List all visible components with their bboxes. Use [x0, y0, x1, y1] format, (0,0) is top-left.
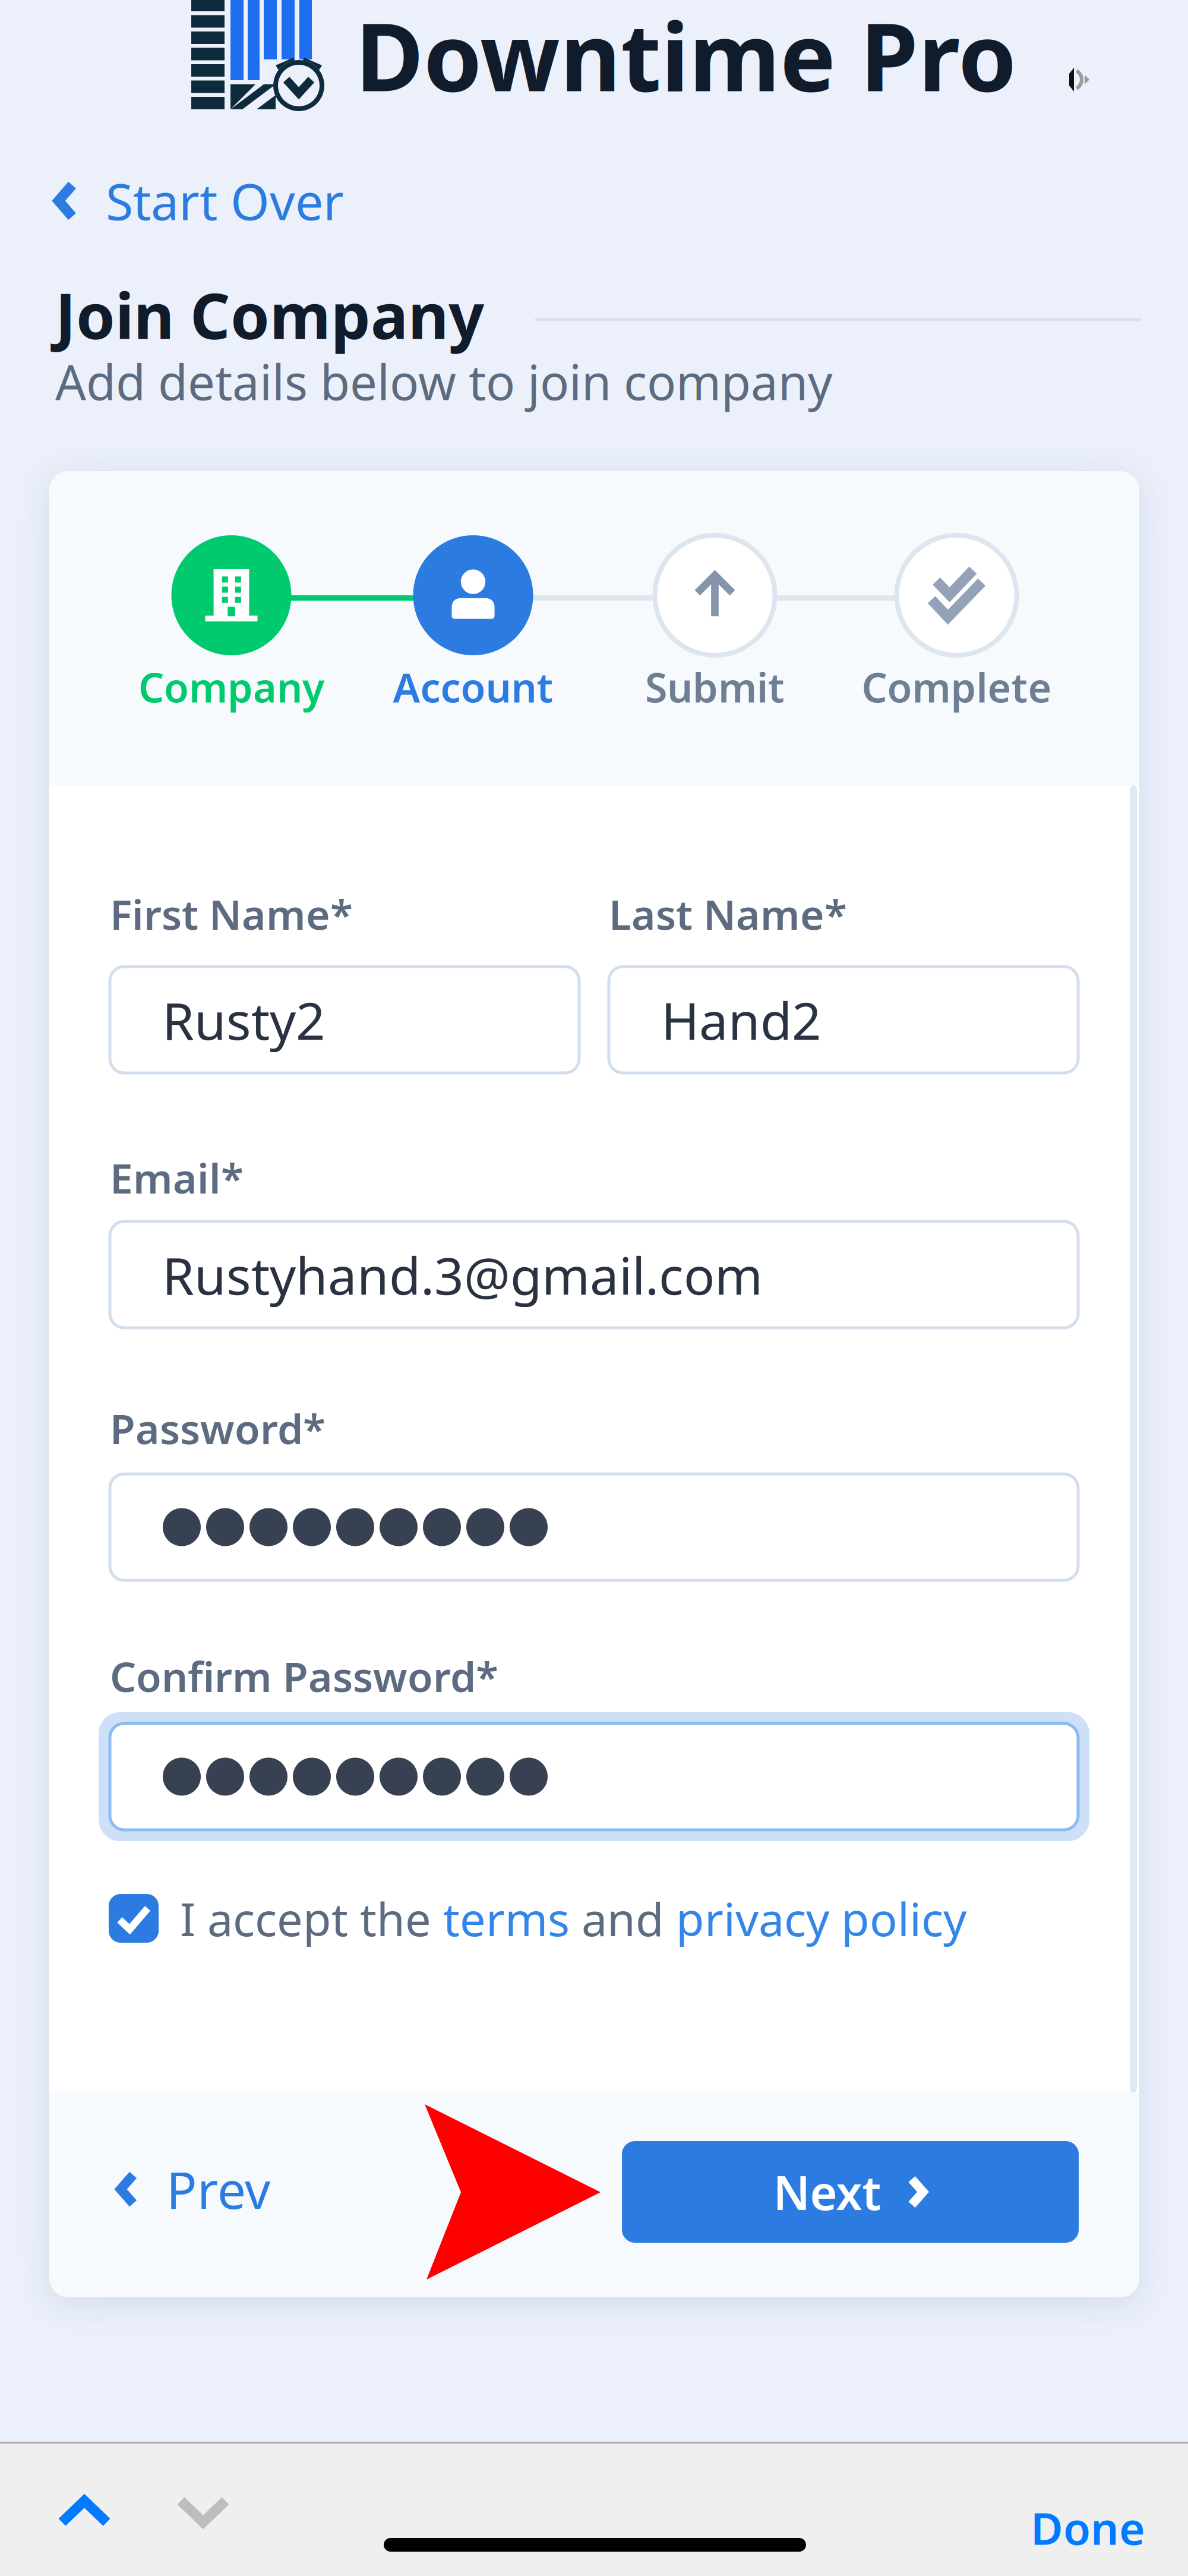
- staticText: Add details below to join company: [55, 349, 832, 413]
- staticText: Email*: [110, 1150, 244, 1205]
- staticText: Start Over: [106, 168, 344, 234]
- staticText: Rustyhand.3@gmail.com: [162, 1240, 763, 1309]
- button[interactable]: Previous field: [31, 2470, 138, 2553]
- staticText: Account: [393, 660, 553, 714]
- staticText: Next: [773, 2161, 881, 2223]
- staticText: First Name*: [110, 886, 353, 941]
- button[interactable]: I accept the: [49, 1880, 990, 1957]
- staticText: I accept the: [180, 1888, 443, 1949]
- staticText: terms: [443, 1888, 570, 1949]
- staticText: Company: [138, 660, 324, 714]
- staticText: Join Company: [55, 273, 484, 356]
- button[interactable]: Done: [1007, 2474, 1169, 2576]
- staticText: Confirm Password*: [110, 1649, 498, 1703]
- staticText: and: [570, 1888, 676, 1949]
- staticText: Downtime Pro: [355, 0, 1016, 117]
- button[interactable]: Next field: [150, 2470, 257, 2553]
- staticText: Password*: [110, 1401, 326, 1456]
- staticText: Prev: [166, 2156, 270, 2223]
- button[interactable]: Next: [622, 2141, 1079, 2243]
- staticText: Rusty2: [162, 986, 326, 1054]
- staticText: Hand2: [661, 986, 822, 1054]
- button[interactable]: Start Over: [0, 156, 368, 245]
- button[interactable]: Prev: [49, 2148, 300, 2231]
- staticText: Complete: [862, 660, 1052, 714]
- staticText: Done: [1031, 2498, 1145, 2557]
- staticText: privacy policy: [676, 1888, 966, 1949]
- staticText: Last Name*: [609, 886, 847, 941]
- staticText: Submit: [645, 660, 785, 714]
